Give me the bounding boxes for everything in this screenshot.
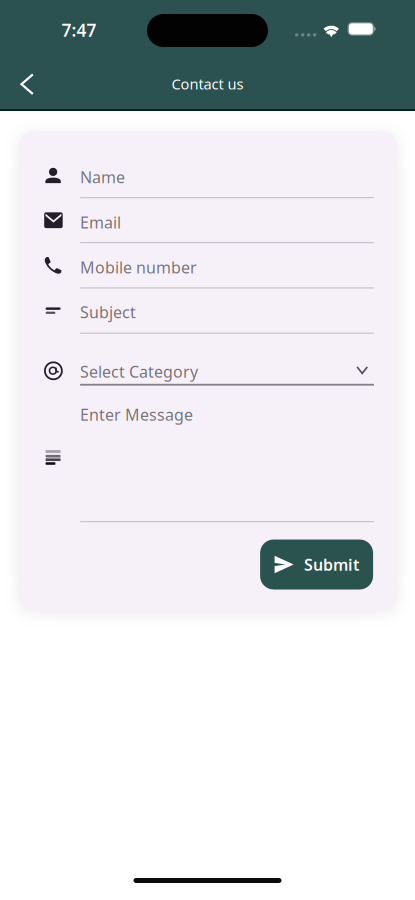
staticText: Name: [80, 166, 125, 188]
button[interactable]: Subject: [19, 303, 359, 348]
staticText: 7:47: [61, 18, 96, 41]
button[interactable]: Select Category: [19, 362, 359, 396]
staticText: Select Category: [80, 361, 198, 382]
staticText: Enter Message: [80, 404, 193, 425]
staticText: Mobile number: [80, 257, 197, 278]
button[interactable]: Enter Message: [19, 406, 359, 526]
staticText: Submit: [304, 554, 359, 575]
button[interactable]: Name: [19, 167, 359, 212]
button[interactable]: Submit: [260, 539, 373, 589]
staticText: Email: [80, 212, 121, 233]
staticText: Subject: [80, 301, 136, 323]
button[interactable]: Back: [5, 62, 49, 106]
staticText: Contact us: [171, 74, 243, 94]
button[interactable]: Email: [19, 212, 359, 257]
button[interactable]: Mobile number: [19, 257, 359, 302]
